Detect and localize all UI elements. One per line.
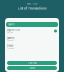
- staticText: Select from: [26, 3, 37, 5]
- button[interactable]: Search: [6, 22, 58, 27]
- staticText: List Of Translations: [18, 7, 46, 10]
- staticText: Espanol: [7, 39, 13, 41]
- button[interactable]: French: [5, 43, 59, 51]
- button[interactable]: Continue: [7, 61, 57, 65]
- staticText: English (US): [7, 29, 20, 31]
- staticText: Spanish: [7, 37, 14, 39]
- button[interactable]: English (US): [5, 27, 59, 35]
- staticText: Francais: [7, 47, 14, 49]
- button[interactable]: Cancel: [7, 66, 57, 70]
- staticText: Default: [7, 31, 13, 33]
- staticText: Search: [8, 23, 14, 26]
- staticText: Continue: [27, 62, 36, 64]
- staticText: French: [7, 45, 13, 47]
- button[interactable]: Spanish: [5, 35, 59, 43]
- staticText: Cancel: [28, 67, 35, 69]
